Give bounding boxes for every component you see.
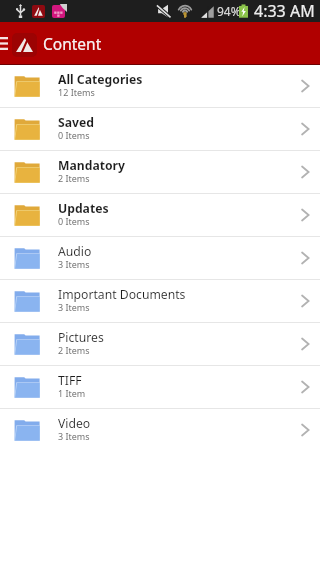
staticText: 94% [217,3,241,19]
button[interactable]: Important Documents [0,280,320,322]
staticText: Audio [58,243,92,260]
button[interactable]: Open navigation menu [0,33,9,53]
staticText: Saved [58,114,94,131]
staticText: All Categories [58,71,143,88]
staticText: Content [43,33,102,54]
staticText: 2 Items [58,172,90,184]
staticText: Mandatory [58,157,126,174]
button[interactable]: Pictures [0,323,320,365]
staticText: Video [58,415,91,432]
button[interactable]: Saved [0,108,320,150]
staticText: 2 Items [58,344,90,356]
staticText: Updates [58,200,109,217]
staticText: 12 Items [58,86,95,98]
staticText: 1 Item [58,387,86,399]
button[interactable]: Video [0,409,320,451]
button[interactable]: Updates [0,194,320,236]
button[interactable]: All Categories [0,65,320,107]
staticText: Important Documents [58,286,186,303]
staticText: 0 Items [58,215,90,227]
staticText: Pictures [58,329,104,346]
staticText: 4:33 AM [254,0,315,22]
staticText: 3 Items [58,258,90,270]
staticText: 3 Items [58,430,90,442]
button[interactable]: Audio [0,237,320,279]
staticText: 0 Items [58,129,90,141]
staticText: 3 Items [58,301,90,313]
staticText: TIFF [58,372,82,389]
button[interactable]: Mandatory [0,151,320,193]
button[interactable]: TIFF [0,366,320,408]
